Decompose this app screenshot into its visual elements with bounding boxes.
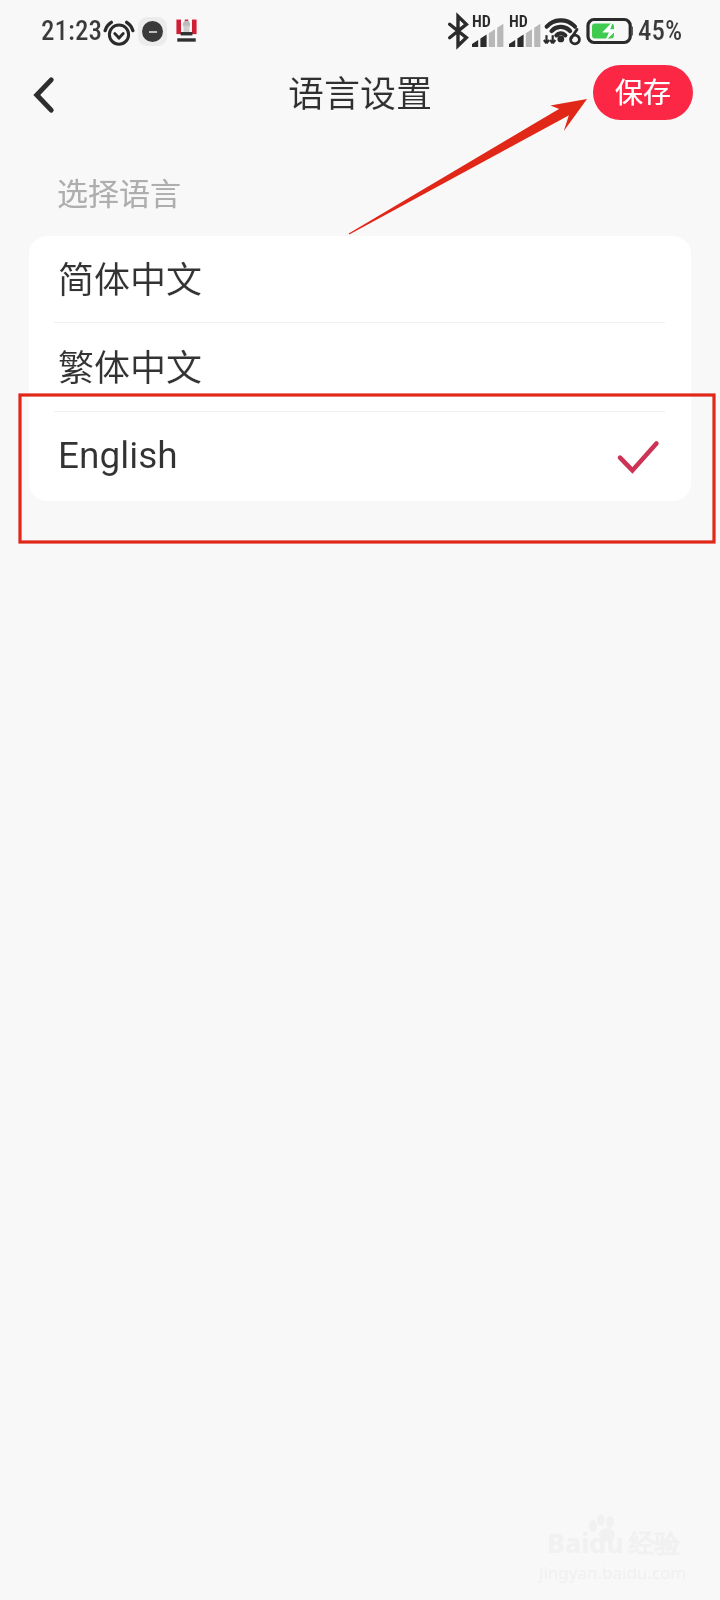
staticText: 经验	[628, 1528, 680, 1561]
staticText: 保存	[615, 71, 672, 112]
button[interactable]: 繁体中文	[29, 323, 691, 412]
staticText: HD	[472, 12, 491, 31]
staticText: English	[58, 434, 178, 477]
button[interactable]: Back	[12, 62, 76, 128]
button[interactable]: 保存	[593, 65, 693, 120]
staticText: 繁体中文	[58, 339, 203, 391]
staticText: 简体中文	[58, 251, 203, 303]
button[interactable]: English	[29, 412, 691, 501]
staticText: HD	[509, 12, 528, 31]
staticText: 选择语言	[57, 169, 181, 214]
staticText: Baidu	[547, 1524, 624, 1561]
staticText: 45%	[638, 15, 683, 47]
staticText: 语言设置	[288, 65, 433, 117]
staticText: 21:23	[41, 15, 102, 47]
button[interactable]: 简体中文	[29, 236, 691, 323]
